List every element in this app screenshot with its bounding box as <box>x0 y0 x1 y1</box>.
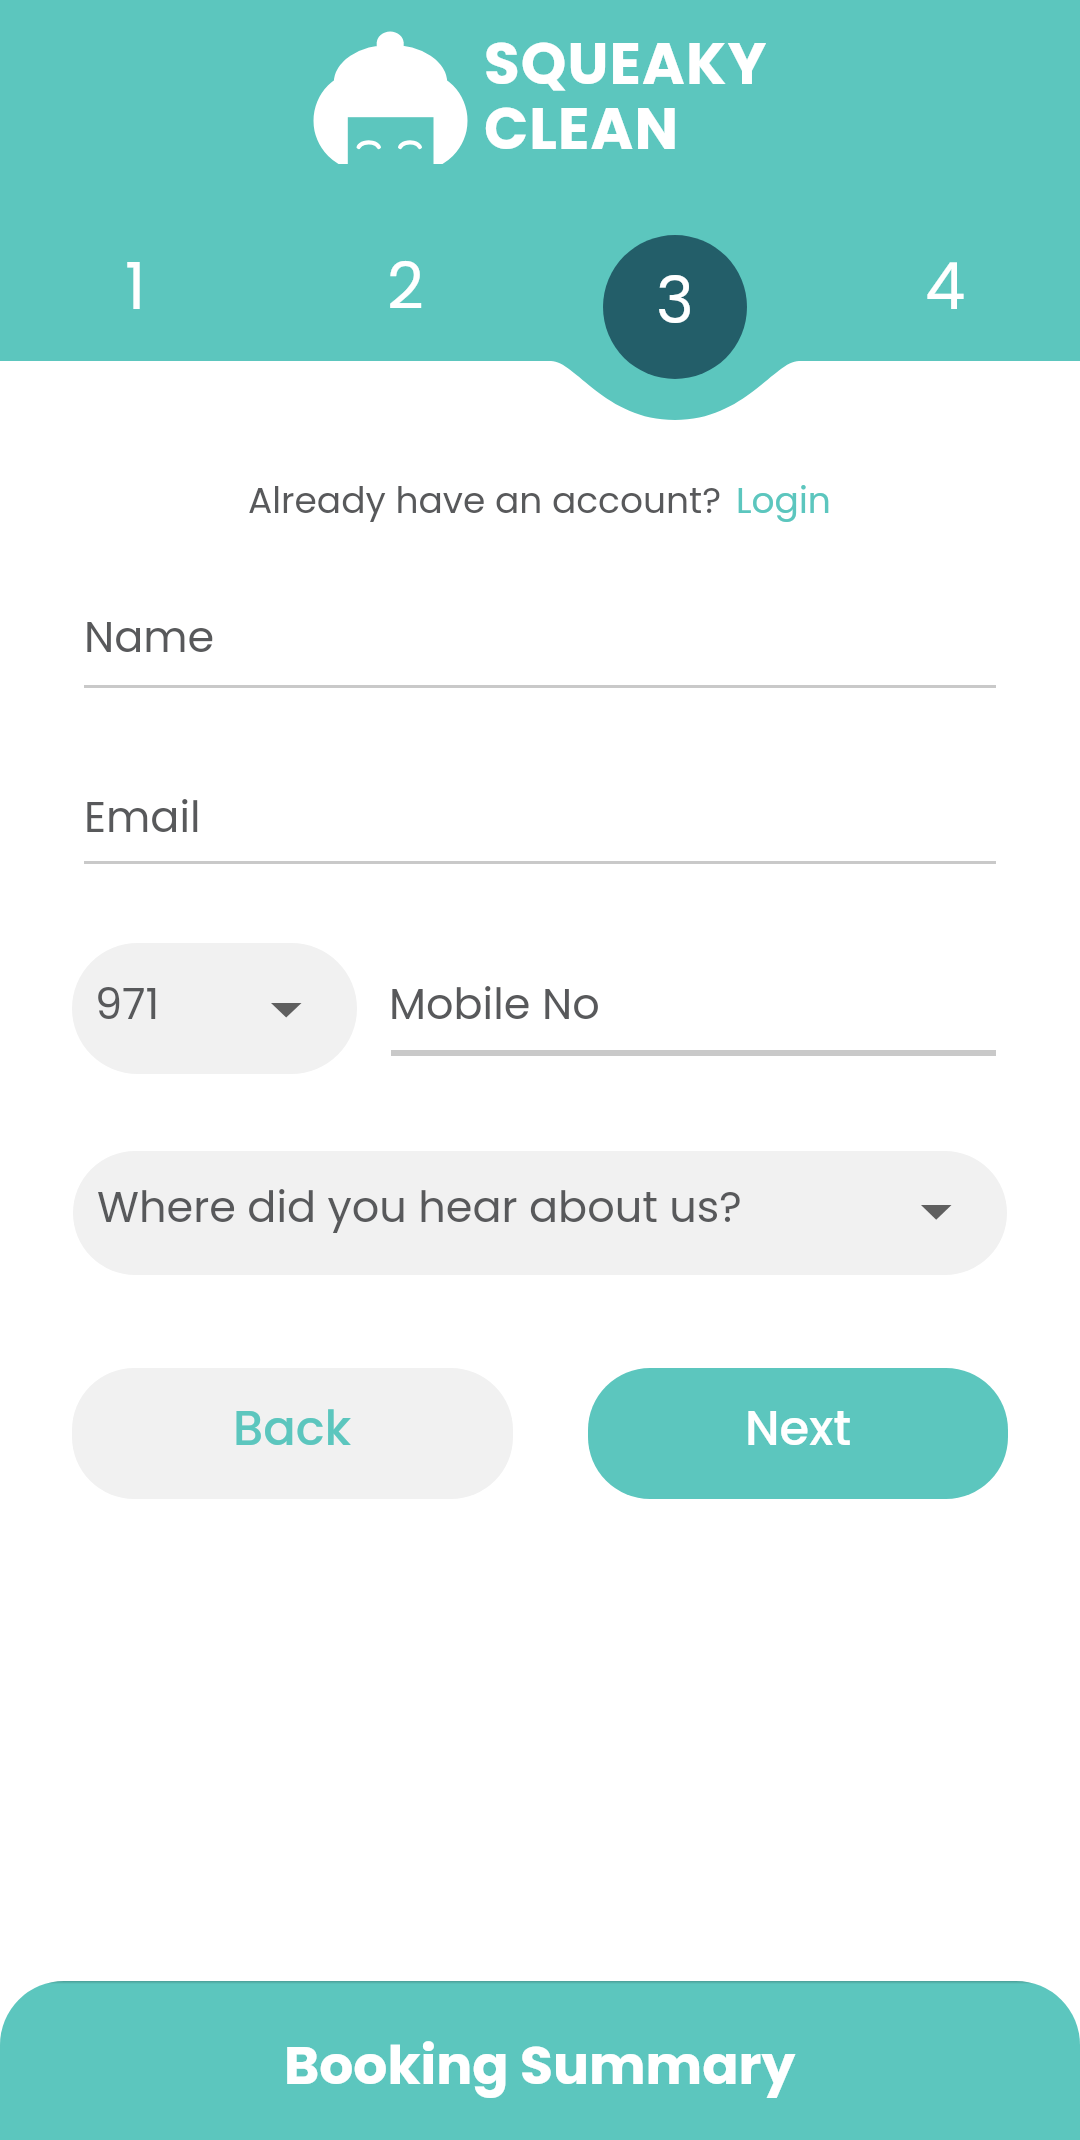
staticText: Where did you hear about us? <box>97 1177 742 1237</box>
button[interactable]: Email <box>84 787 996 861</box>
button[interactable]: Country code 971 <box>72 943 357 1074</box>
button[interactable]: Back <box>72 1368 513 1499</box>
staticText: Name <box>84 607 215 667</box>
button[interactable]: 4 <box>810 242 1080 322</box>
button[interactable]: Login <box>734 475 833 525</box>
staticText: Email <box>84 787 201 847</box>
staticText: 971 <box>95 974 160 1034</box>
staticText: Already have an account? <box>248 475 722 525</box>
staticText: SQUEAKY <box>484 23 768 104</box>
staticText: Booking Summary <box>284 2028 796 2103</box>
button[interactable]: Next <box>588 1368 1008 1499</box>
button[interactable]: 2 <box>270 242 540 322</box>
staticText: Back <box>233 1395 352 1462</box>
button[interactable]: Where did you hear about us? <box>73 1151 1007 1275</box>
staticText: CLEAN <box>484 88 680 169</box>
other: Squeaky Clean logo <box>313 31 468 164</box>
staticText: Mobile No <box>389 974 600 1034</box>
button[interactable]: Name <box>84 607 996 681</box>
button[interactable]: Mobile No <box>389 974 996 1048</box>
button[interactable]: Booking Summary <box>0 1981 1080 2140</box>
staticText: 4 <box>925 242 966 322</box>
staticText: 1 <box>125 242 146 322</box>
staticText: 2 <box>387 242 424 322</box>
button[interactable]: 1 <box>0 242 270 322</box>
staticText: Login <box>736 475 831 525</box>
staticText: Next <box>745 1395 852 1462</box>
button[interactable]: 3 <box>540 256 810 336</box>
staticText: 3 <box>656 256 694 336</box>
